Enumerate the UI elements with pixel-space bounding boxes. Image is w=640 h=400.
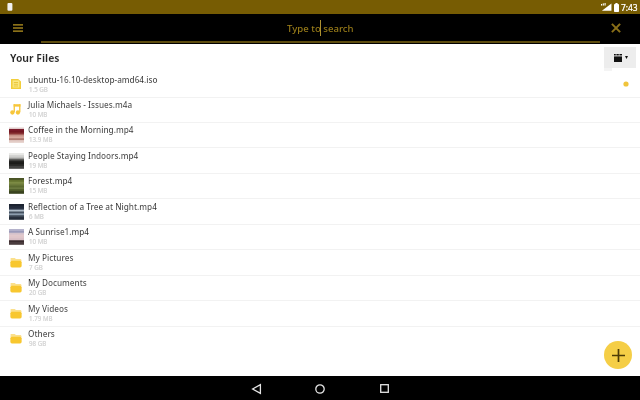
button[interactable]: Julia Michaels - Issues.m4a [0, 98, 640, 123]
button[interactable]: Others [0, 327, 640, 352]
button[interactable]: My Videos [0, 302, 640, 327]
button[interactable]: Forest.mp4 [0, 174, 640, 199]
staticText: 7:43 [621, 2, 638, 13]
staticText: A Sunrise1.mp4 [28, 226, 90, 237]
staticText: Reflection of a Tree at Night.mp4 [28, 201, 157, 212]
staticText: People Staying Indoors.mp4 [28, 150, 139, 161]
staticText: 1.79 MB [29, 314, 53, 322]
staticText: Others [28, 328, 55, 339]
button[interactable]: Change view [604, 47, 636, 68]
staticText: 98 GB [29, 339, 47, 347]
staticText: 19 MB [29, 161, 48, 169]
staticText: Coffee in the Morning.mp4 [28, 124, 134, 135]
button[interactable]: Menu [5, 15, 31, 41]
staticText: My Documents [28, 277, 87, 288]
button[interactable]: My Documents [0, 276, 640, 301]
staticText: Julia Michaels - Issues.m4a [28, 99, 133, 110]
staticText: Your Files [10, 51, 60, 65]
button[interactable]: Recents [366, 377, 402, 400]
button[interactable]: A Sunrise1.mp4 [0, 225, 640, 250]
button[interactable]: Home [302, 377, 338, 400]
staticText: 10 MB [29, 237, 48, 245]
button[interactable]: Reflection of a Tree at Night.mp4 [0, 200, 640, 225]
staticText: 7 GB [29, 263, 43, 271]
staticText: My Pictures [28, 252, 74, 263]
button[interactable]: Back [238, 377, 274, 400]
button[interactable]: Coffee in the Morning.mp4 [0, 123, 640, 148]
staticText: Forest.mp4 [28, 175, 73, 186]
staticText: ubuntu-16.10-desktop-amd64.iso [28, 74, 158, 85]
staticText: 15 MB [29, 186, 48, 194]
staticText: My Videos [28, 303, 68, 314]
staticText: 10 MB [29, 110, 48, 118]
button[interactable]: People Staying Indoors.mp4 [0, 149, 640, 174]
staticText: 20 GB [29, 288, 47, 296]
button[interactable]: Add [604, 341, 632, 369]
staticText: 1.5 GB [29, 85, 48, 93]
button[interactable]: ubuntu-16.10-desktop-amd64.iso [0, 73, 640, 98]
button[interactable]: My Pictures [0, 251, 640, 276]
staticText: 6 MB [29, 212, 44, 220]
button[interactable]: Close search [603, 15, 629, 41]
staticText: 13.9 MB [29, 135, 53, 143]
staticText: Type to search [287, 22, 354, 35]
